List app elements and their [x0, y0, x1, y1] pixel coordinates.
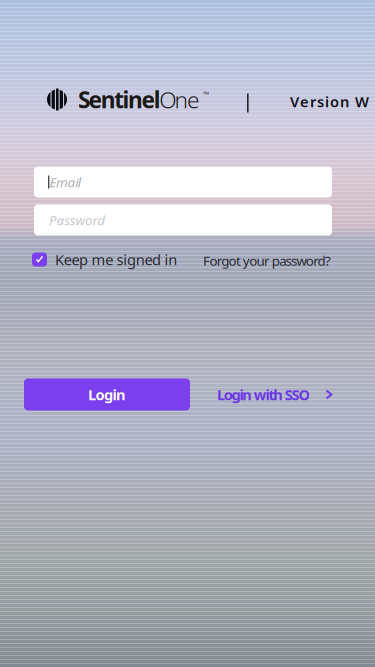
staticText: ™ [203, 89, 209, 100]
staticText: Login with SSO [217, 385, 310, 404]
staticText: Version W [290, 92, 369, 111]
staticText: Login [88, 385, 126, 404]
staticText: Email [49, 173, 81, 191]
button[interactable]: Forgot your password? [203, 252, 343, 269]
staticText: Keep me signed in [55, 250, 177, 269]
staticText: Forgot your password? [203, 252, 331, 269]
button[interactable]: Login [24, 378, 190, 410]
staticText: Password [49, 211, 105, 229]
staticText: SentinelOne [78, 84, 200, 114]
button[interactable]: Login with SSO [217, 385, 333, 404]
button[interactable]: Keep me signed in [32, 250, 192, 269]
